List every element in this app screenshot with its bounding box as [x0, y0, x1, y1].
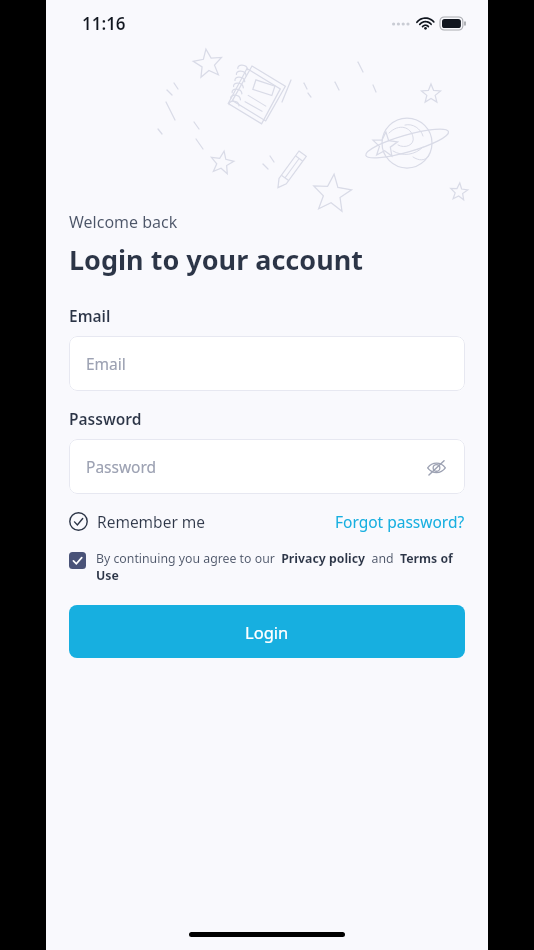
staticText: Email — [86, 353, 126, 374]
staticText: Welcome back — [69, 211, 178, 233]
staticText: By continuing you agree to our Privacy p… — [96, 550, 465, 584]
button[interactable]: Show password — [420, 451, 452, 483]
button[interactable]: Forgot password? — [335, 507, 465, 536]
staticText: Password — [86, 456, 157, 477]
button[interactable]: Remember me — [69, 507, 206, 536]
staticText: 11:16 — [82, 12, 126, 35]
button[interactable]: Login — [69, 605, 465, 658]
staticText: Login — [245, 621, 289, 643]
button[interactable]: By continuing you agree to our Privacy p… — [69, 550, 465, 584]
button[interactable]: Password — [69, 439, 465, 494]
staticText: Email — [69, 305, 111, 326]
staticText: Remember me — [97, 511, 206, 532]
staticText: Forgot password? — [335, 511, 465, 532]
staticText: Password — [69, 408, 142, 429]
staticText: Login to your account — [69, 241, 363, 278]
button[interactable]: Email — [69, 336, 465, 391]
